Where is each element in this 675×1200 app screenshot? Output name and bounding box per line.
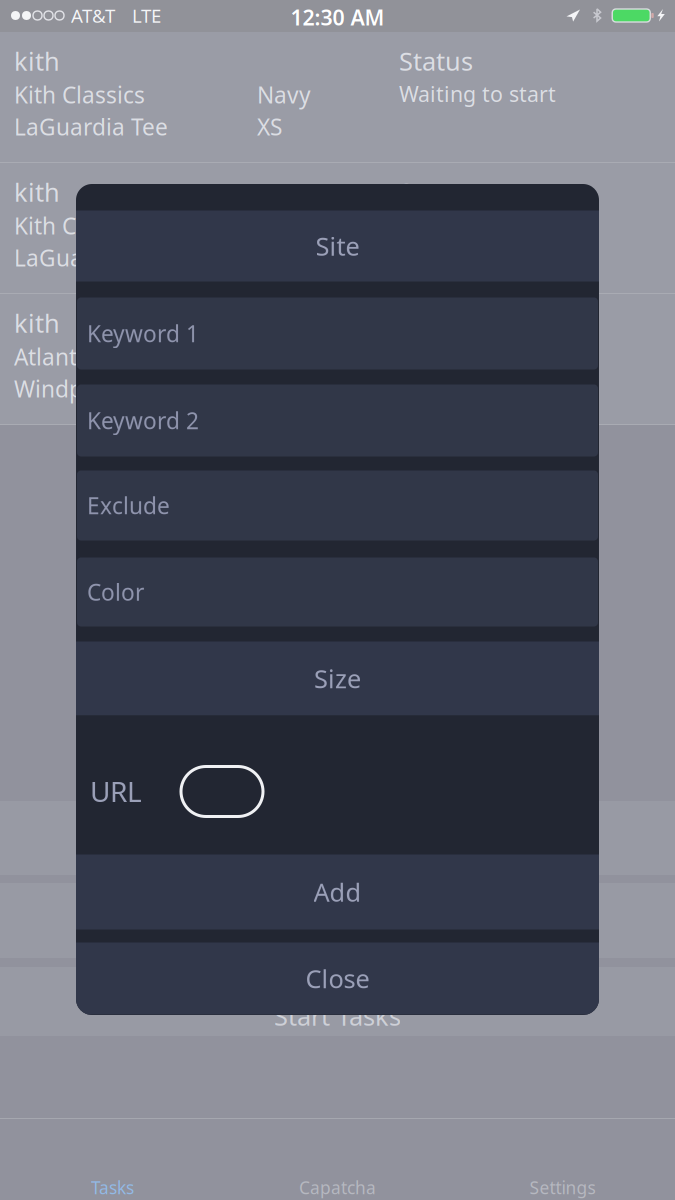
staticText: Keyword 1	[87, 318, 199, 348]
button[interactable]: Exclude	[77, 470, 598, 540]
button[interactable]: kith	[0, 32, 675, 162]
button[interactable]: Settings	[450, 1119, 675, 1200]
button[interactable]: Add	[76, 854, 599, 929]
staticText: Status	[399, 175, 473, 209]
button[interactable]: Keyword 2	[77, 384, 598, 456]
staticText: kith	[14, 44, 60, 78]
staticText: Tasks	[91, 1176, 134, 1199]
button[interactable]: Close	[76, 942, 599, 1014]
staticText: Atlanta Anorak	[14, 342, 172, 372]
button[interactable]: Color	[77, 557, 598, 626]
staticText: Color	[87, 577, 144, 607]
staticText: Waiting to start	[399, 80, 556, 108]
staticText: Status	[399, 44, 473, 78]
staticText: kith	[14, 175, 60, 209]
button[interactable]: Keyword 1	[77, 297, 598, 369]
staticText: AT&T	[71, 3, 115, 28]
staticText: LaGuardia Tee	[14, 112, 168, 142]
staticText: Capatcha	[299, 1176, 376, 1199]
staticText: Start Tasks	[274, 999, 401, 1033]
staticText: Size	[314, 662, 361, 695]
staticText: Add	[313, 875, 361, 909]
button[interactable]: kith	[0, 294, 675, 424]
staticText: M	[257, 374, 278, 404]
button[interactable]: Create Task	[0, 801, 675, 875]
staticText: LTE	[132, 3, 161, 28]
staticText: Windproof Jkt	[14, 374, 160, 404]
button[interactable]: kith	[0, 163, 675, 293]
staticText: Keyword 2	[87, 405, 199, 435]
staticText: Kith Classics	[14, 211, 145, 241]
staticText: kith	[14, 306, 60, 340]
staticText: Navy	[257, 80, 311, 110]
staticText: Kith Classics	[14, 80, 145, 110]
staticText: Site	[315, 229, 359, 263]
staticText: 12:30 AM	[290, 3, 384, 31]
button[interactable]: Start Tasks	[0, 967, 675, 1036]
button[interactable]: Delete All	[0, 883, 675, 958]
staticText: Black	[257, 342, 314, 372]
button[interactable]: Capatcha	[225, 1119, 450, 1200]
button[interactable]: Tasks	[0, 1119, 225, 1200]
staticText: LaGuardia Tee	[14, 243, 168, 273]
staticText: Close	[305, 962, 369, 995]
button[interactable]: Toggle URL	[181, 766, 263, 816]
staticText: URL	[90, 772, 142, 810]
staticText: Create Task	[269, 833, 405, 867]
button[interactable]: Size	[76, 641, 599, 715]
staticText	[257, 175, 264, 209]
staticText: XS	[257, 112, 282, 142]
staticText: Settings	[529, 1176, 595, 1199]
staticText: Delete All	[281, 915, 394, 949]
staticText: Exclude	[87, 490, 170, 520]
button[interactable]: Site	[76, 210, 599, 281]
